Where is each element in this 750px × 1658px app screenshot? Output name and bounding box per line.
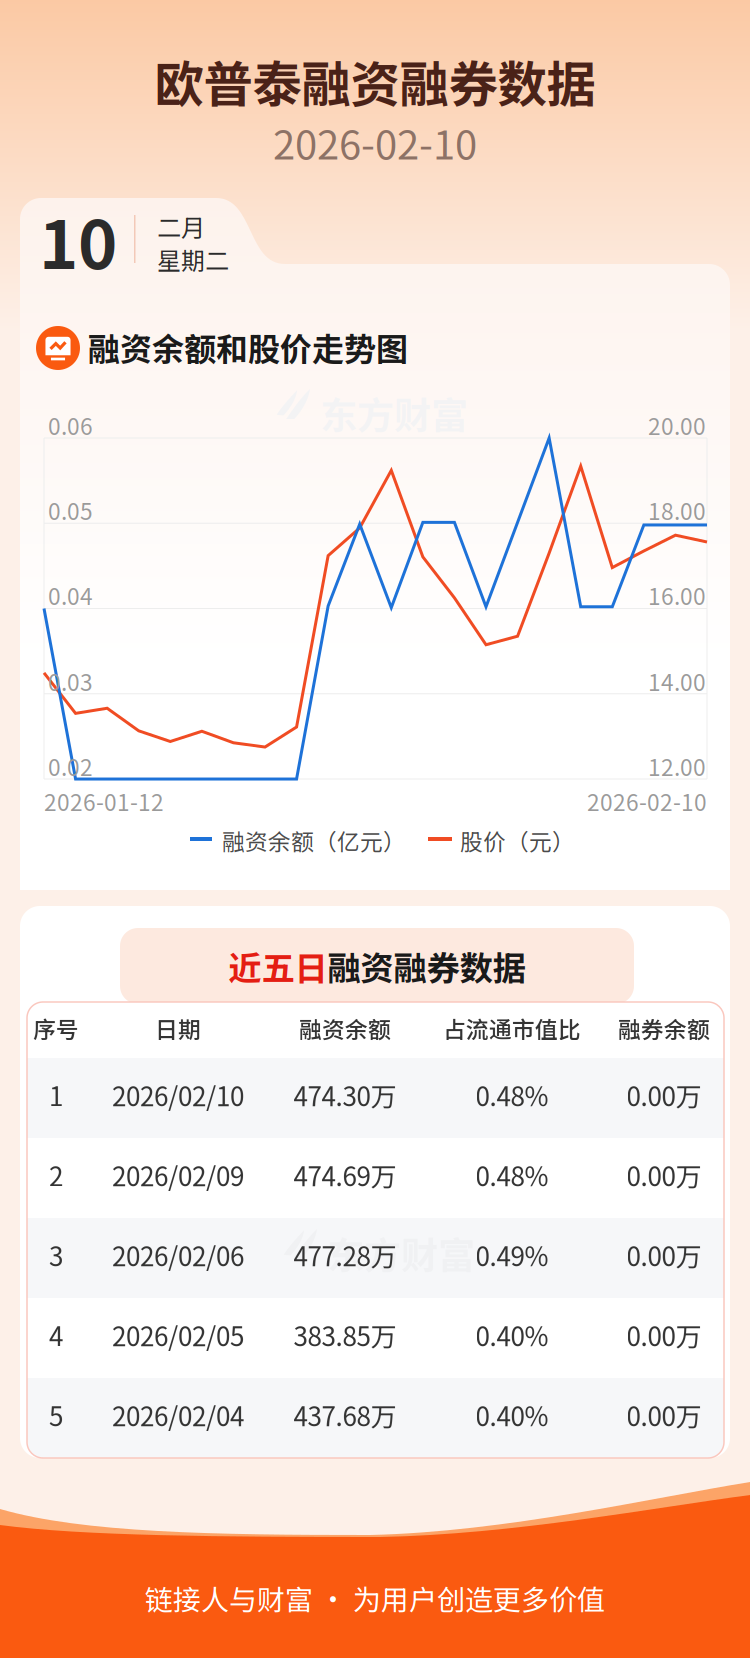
staticText: 4 [49,1316,63,1354]
staticText: 2026-01-12 [44,785,164,817]
staticText: 1 [49,1076,63,1114]
staticText: 12.00 [648,750,706,782]
staticText: 0.00万 [626,1396,701,1434]
staticText: 欧普泰融资融券数据 [154,45,595,117]
staticText: 2026/02/06 [112,1236,244,1274]
staticText: 437.68万 [293,1396,396,1434]
staticText: 474.69万 [293,1156,396,1194]
staticText: 2 [49,1156,63,1194]
staticText: 0.48% [475,1156,548,1194]
staticText: 融资融券数据 [327,942,525,990]
staticText: 3 [49,1236,63,1274]
staticText: 融资余额 [299,1012,391,1044]
staticText: 0.49% [475,1236,548,1274]
staticText: 10 [39,192,117,288]
staticText: 链接人与财富 · 为用户创造更多价值 [145,1578,605,1618]
staticText: 0.00万 [626,1236,701,1274]
staticText: 474.30万 [293,1076,396,1114]
staticText: 东方财富 [327,1226,475,1280]
staticText: 0.00万 [626,1316,701,1354]
staticText: 日期 [155,1012,201,1044]
staticText: 477.28万 [293,1236,396,1274]
staticText: 383.85万 [293,1316,396,1354]
staticText: 14.00 [648,665,706,697]
staticText: 0.40% [475,1316,548,1354]
staticText: 0.48% [475,1076,548,1114]
staticText: 序号 [33,1012,79,1044]
staticText: 东方财富 [320,386,468,440]
staticText: 0.40% [475,1396,548,1434]
staticText: 0.02 [48,750,93,782]
staticText: 融资余额和股价走势图 [88,324,408,370]
staticText: 0.03 [48,665,93,697]
staticText: 0.06 [48,409,93,441]
staticText: 占流通市值比 [443,1012,581,1044]
staticText: 0.00万 [626,1076,701,1114]
staticText: 2026/02/04 [112,1396,244,1434]
staticText: 融资余额（亿元） [222,824,406,857]
staticText: 星期二 [157,242,229,277]
staticText: 5 [49,1396,63,1434]
staticText: 2026-02-10 [273,113,477,171]
staticText: 0.00万 [626,1156,701,1194]
staticText: 股价（元） [460,824,575,857]
staticText: 2026/02/10 [112,1076,244,1114]
staticText: 18.00 [648,494,706,526]
staticText: 2026/02/05 [112,1316,244,1354]
staticText: 二月 [157,209,205,244]
staticText: 16.00 [648,579,706,611]
staticText: 融券余额 [618,1012,710,1044]
staticText: 0.04 [48,579,93,611]
staticText: 近五日 [228,942,327,990]
staticText: 20.00 [648,409,706,441]
staticText: 0.05 [48,494,93,526]
staticText: 2026/02/09 [112,1156,244,1194]
staticText: 2026-02-10 [587,785,707,817]
